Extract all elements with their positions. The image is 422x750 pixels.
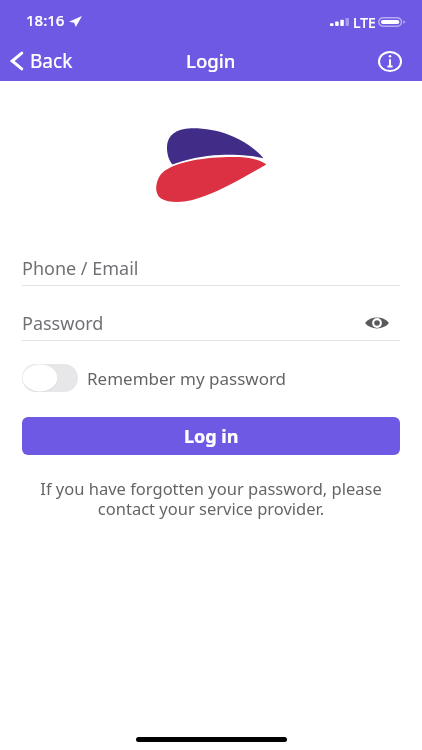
staticText: If you have forgotten your password, ple… bbox=[22, 477, 400, 520]
button[interactable]: Log in bbox=[22, 417, 400, 455]
button[interactable]: Show password bbox=[361, 307, 393, 339]
button[interactable]: Remember my password bbox=[22, 364, 400, 392]
button[interactable]: Phone / Email bbox=[22, 251, 400, 286]
button[interactable]: Back bbox=[0, 44, 81, 78]
button[interactable]: Information bbox=[375, 46, 405, 76]
button[interactable]: Remember my password bbox=[22, 364, 78, 392]
staticText: Back bbox=[30, 48, 73, 74]
button[interactable]: Password bbox=[22, 306, 400, 341]
staticText: Phone / Email bbox=[22, 256, 139, 281]
staticText: Log in bbox=[184, 424, 239, 449]
staticText: LTE bbox=[353, 13, 376, 32]
staticText: 18:16 bbox=[26, 10, 65, 30]
staticText: Password bbox=[22, 311, 104, 336]
staticText: Remember my password bbox=[87, 367, 287, 390]
staticText: Login bbox=[186, 48, 236, 73]
